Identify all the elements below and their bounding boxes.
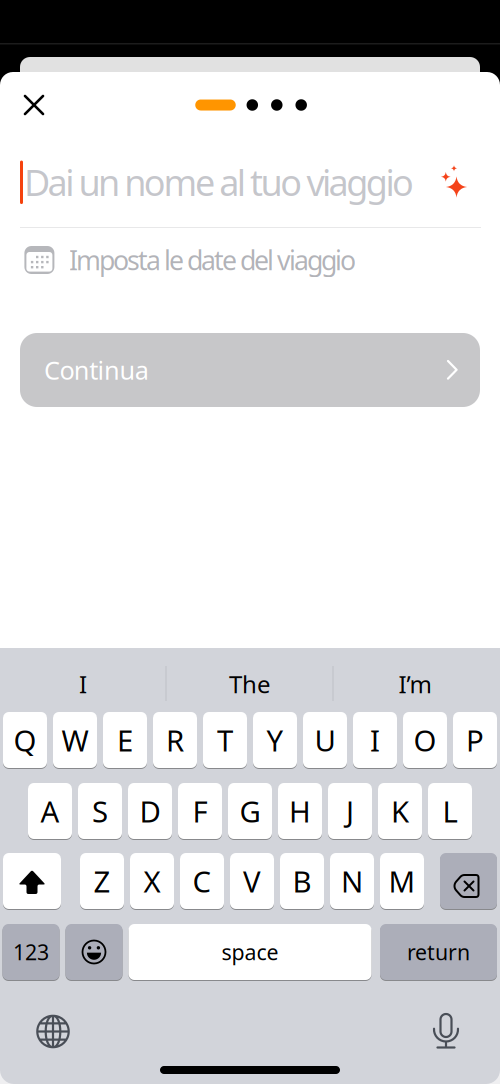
staticText: Q (13, 720, 36, 759)
staticText: F (192, 791, 207, 830)
button[interactable]: O (403, 711, 447, 769)
staticText: L (442, 791, 457, 830)
button[interactable]: F (178, 782, 222, 840)
button[interactable]: Maiuscole (3, 852, 61, 910)
button[interactable]: Y (253, 711, 297, 769)
staticText: H (289, 791, 311, 830)
button[interactable]: R (153, 711, 197, 769)
button[interactable]: Continua (20, 333, 480, 407)
staticText: The (229, 668, 271, 700)
button[interactable]: N (330, 852, 374, 910)
button[interactable]: Z (80, 852, 124, 910)
button[interactable]: return (380, 923, 497, 981)
button[interactable]: X (130, 852, 174, 910)
staticText: Y (266, 720, 283, 759)
staticText: X (143, 861, 160, 900)
button[interactable]: 123 (2, 923, 59, 981)
button[interactable]: Cambia tastiera (18, 996, 88, 1066)
staticText: D (139, 791, 160, 830)
staticText: V (243, 861, 261, 900)
button[interactable]: Dettatura (411, 995, 481, 1065)
staticText: M (388, 861, 415, 900)
button[interactable]: Imposta le date del viaggio (0, 232, 500, 288)
button[interactable]: I (353, 711, 397, 769)
staticText: A (40, 791, 59, 830)
button[interactable]: E (103, 711, 147, 769)
button[interactable]: K (378, 782, 422, 840)
staticText: S (92, 791, 108, 830)
staticText: C (192, 861, 211, 900)
staticText: 123 (13, 938, 49, 966)
button[interactable]: B (280, 852, 324, 910)
staticText: O (413, 720, 436, 759)
button[interactable]: T (203, 711, 247, 769)
staticText: Imposta le date del viaggio (69, 242, 356, 278)
button[interactable]: H (278, 782, 322, 840)
staticText: R (166, 720, 184, 759)
button[interactable]: I (3, 656, 163, 712)
staticText: I (370, 720, 380, 759)
staticText: T (217, 720, 233, 759)
staticText: K (391, 791, 409, 830)
button[interactable]: W (53, 711, 97, 769)
button[interactable]: Chiudi (15, 86, 53, 124)
staticText: B (292, 861, 311, 900)
button[interactable]: C (180, 852, 224, 910)
button[interactable]: G (228, 782, 272, 840)
staticText: return (407, 938, 470, 966)
button[interactable]: Cancella (440, 852, 497, 910)
button[interactable]: The (170, 656, 330, 712)
staticText: I’m (398, 668, 431, 700)
button[interactable]: J (328, 782, 372, 840)
staticText: Continua (44, 353, 149, 387)
staticText: P (466, 720, 484, 759)
button[interactable]: Emoji (65, 923, 122, 981)
staticText: Dai un nome al tuo viaggio (24, 158, 414, 206)
button[interactable]: A (28, 782, 72, 840)
staticText: W (61, 720, 88, 759)
button[interactable]: P (453, 711, 497, 769)
staticText: U (314, 720, 335, 759)
button[interactable]: D (128, 782, 172, 840)
staticText: space (221, 938, 278, 966)
button[interactable]: space (128, 923, 371, 981)
staticText: N (341, 861, 363, 900)
button[interactable]: L (428, 782, 472, 840)
button[interactable]: I’m (335, 656, 495, 712)
button[interactable]: M (380, 852, 424, 910)
button[interactable]: Genera nome (428, 158, 476, 206)
staticText: G (239, 791, 260, 830)
staticText: Z (93, 861, 110, 900)
button[interactable]: V (230, 852, 274, 910)
staticText: I (79, 668, 87, 700)
button[interactable]: U (303, 711, 347, 769)
button[interactable]: Q (3, 711, 47, 769)
button[interactable]: S (78, 782, 122, 840)
staticText: E (117, 720, 133, 759)
staticText: J (346, 791, 354, 830)
